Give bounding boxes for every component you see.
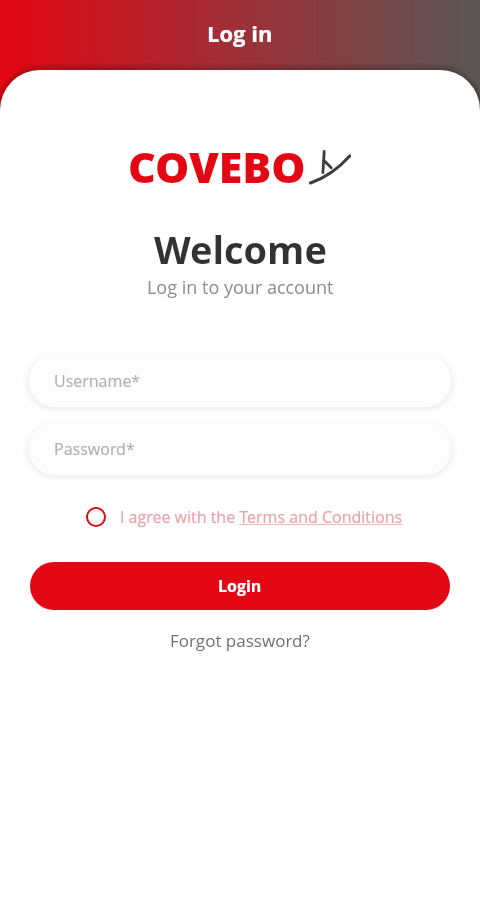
staticText: Log in to your account — [147, 275, 334, 300]
staticText: Username* — [54, 370, 141, 392]
button[interactable]: Forgot password? — [160, 621, 320, 660]
staticText: Password* — [54, 438, 135, 460]
button[interactable]: I agree with the Terms and Conditions — [72, 502, 409, 532]
staticText: Login — [218, 575, 262, 597]
staticText: I agree with the Terms and Conditions — [120, 506, 403, 528]
staticText: COVEBO — [128, 137, 306, 196]
button[interactable]: Login — [30, 562, 450, 610]
staticText: Forgot password? — [170, 629, 310, 652]
button[interactable]: Username* — [29, 354, 451, 407]
staticText: Log in — [207, 18, 273, 48]
staticText: Welcome — [154, 223, 327, 275]
button[interactable]: Password* — [29, 422, 451, 475]
